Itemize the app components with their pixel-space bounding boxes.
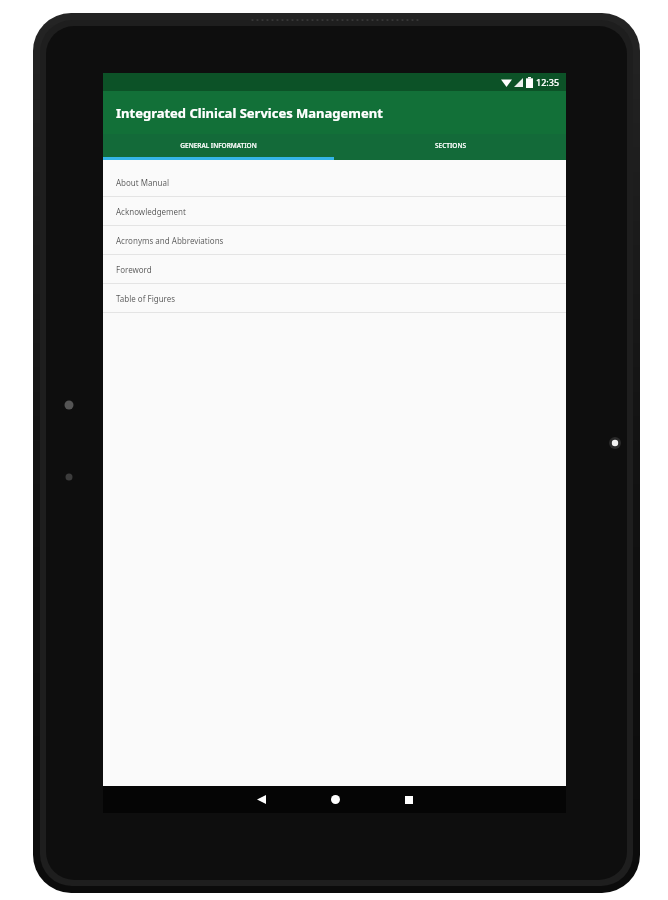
button[interactable]: SECTIONS	[334, 134, 566, 157]
button[interactable]: Foreword	[103, 255, 566, 283]
button[interactable]: Recent apps	[383, 786, 435, 813]
button[interactable]: Table of Figures	[103, 284, 566, 312]
staticText: Table of Figures	[116, 293, 176, 304]
button[interactable]: Acknowledgement	[103, 197, 566, 225]
button[interactable]: GENERAL INFORMATION	[103, 134, 334, 157]
button[interactable]: Home	[309, 786, 361, 813]
staticText: Acronyms and Abbreviations	[116, 235, 224, 246]
staticText: About Manual	[116, 177, 169, 188]
staticText: SECTIONS	[435, 141, 466, 150]
button[interactable]: Acronyms and Abbreviations	[103, 226, 566, 254]
button[interactable]: About Manual	[103, 168, 566, 196]
staticText: Integrated Clinical Services Management	[116, 104, 383, 122]
staticText: Foreword	[116, 264, 152, 275]
staticText: GENERAL INFORMATION	[180, 141, 257, 150]
button[interactable]: Back	[235, 786, 287, 813]
staticText: Acknowledgement	[116, 206, 186, 217]
staticText: 12:35	[536, 76, 560, 88]
